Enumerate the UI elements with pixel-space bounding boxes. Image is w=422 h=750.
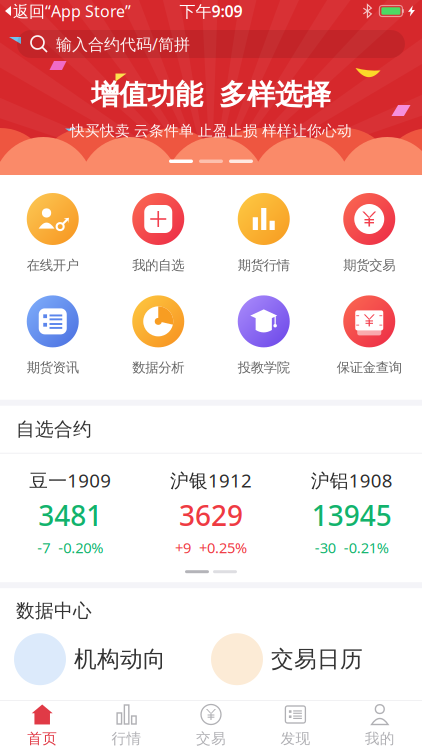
button[interactable]: 交易 (169, 703, 253, 747)
staticText: 交易日历 (271, 645, 363, 673)
staticText: 豆一1909 (29, 468, 111, 493)
staticText: 首页 (27, 729, 57, 747)
button[interactable]: 交易日历 (211, 633, 408, 685)
button[interactable]: 保证金查询 (316, 295, 422, 376)
staticText: 快买快卖 云条件单 止盈止损 样样让你心动 (70, 122, 352, 140)
staticText: 我的 (365, 729, 395, 747)
staticText: 期货资讯 (27, 359, 79, 376)
button[interactable]: 首页 (0, 703, 84, 747)
staticText: 行情 (112, 729, 142, 747)
staticText: 3481 (38, 496, 102, 534)
staticText: 自选合约 (16, 418, 92, 441)
button[interactable]: 豆一1909 (0, 468, 141, 557)
staticText: 沪银1912 (170, 468, 252, 493)
button[interactable]: 沪铝1908 (281, 468, 422, 557)
staticText: 机构动向 (74, 645, 166, 673)
staticText: 下午9:09 (179, 0, 242, 22)
staticText: 我的自选 (132, 257, 184, 273)
staticText: 沪铝1908 (311, 468, 393, 493)
button[interactable]: 我的 (338, 703, 422, 747)
staticText: 输入合约代码/简拼 (56, 33, 190, 55)
staticText: 保证金查询 (337, 359, 402, 376)
button[interactable]: 期货行情 (211, 193, 316, 273)
staticText: -7 -0.20% (37, 538, 103, 557)
staticText: 返回“App Store” (13, 0, 131, 22)
staticText: 数据分析 (132, 359, 184, 376)
staticText: 3629 (179, 496, 243, 534)
staticText: 数据中心 (16, 599, 92, 622)
staticText: -30 -0.21% (315, 538, 389, 557)
button[interactable]: 输入合约代码/简拼 (17, 30, 405, 58)
button[interactable]: 沪银1912 (141, 468, 281, 557)
button[interactable]: 投教学院 (211, 295, 316, 376)
staticText: +9 +0.25% (175, 538, 247, 557)
staticText: 13945 (312, 496, 392, 534)
staticText: 发现 (280, 729, 310, 747)
staticText: 期货交易 (343, 257, 395, 273)
button[interactable]: 返回“App Store” (0, 0, 131, 26)
staticText: 在线开户 (27, 257, 79, 273)
staticText: 交易 (196, 729, 226, 747)
staticText: 期货行情 (238, 257, 290, 273)
button[interactable]: 行情 (84, 703, 169, 747)
button[interactable]: 在线开户 (0, 193, 105, 273)
button[interactable]: 发现 (253, 703, 338, 747)
staticText: 投教学院 (238, 359, 290, 376)
staticText: 增值功能 多样选择 (91, 77, 331, 112)
button[interactable]: 数据分析 (105, 295, 211, 376)
button[interactable]: 期货交易 (316, 193, 422, 273)
button[interactable]: 机构动向 (14, 633, 211, 685)
button[interactable]: 期货资讯 (0, 295, 105, 376)
button[interactable]: 我的自选 (105, 193, 211, 273)
